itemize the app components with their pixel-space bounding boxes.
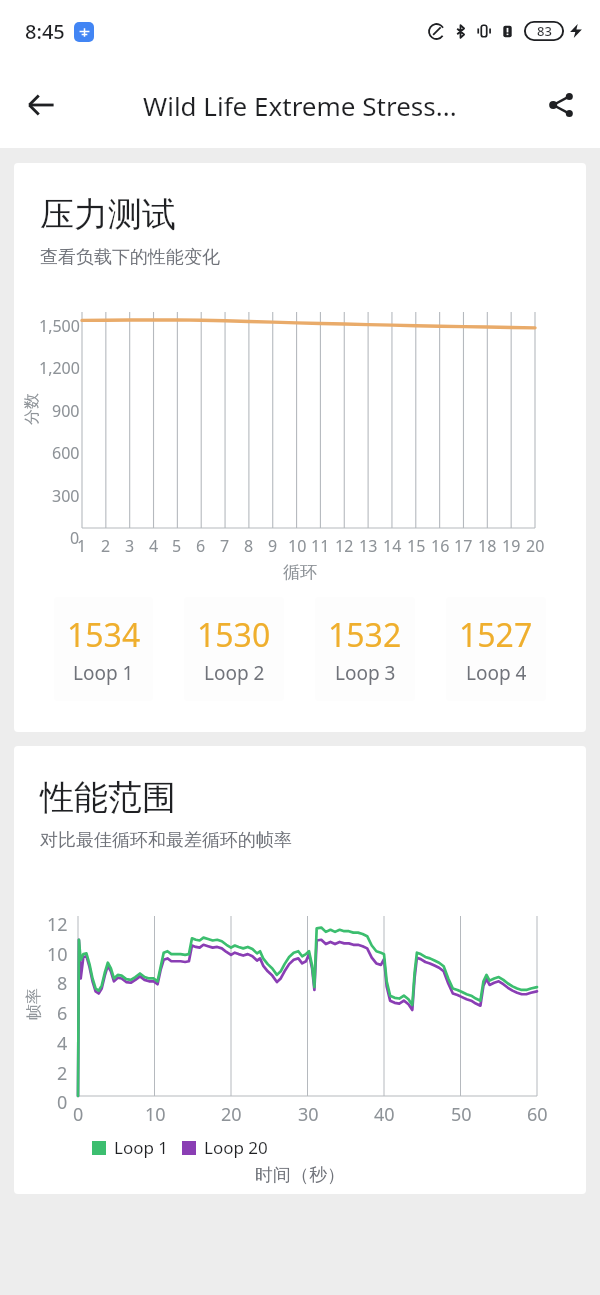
staticText: 1532 bbox=[328, 613, 402, 657]
staticText: 50 bbox=[451, 1102, 472, 1127]
staticText: 19 bbox=[502, 535, 521, 557]
staticText: 性能范围 bbox=[40, 776, 176, 819]
staticText: 83 bbox=[537, 22, 552, 40]
staticText: 17 bbox=[454, 535, 473, 557]
staticText: 6 bbox=[57, 1001, 68, 1026]
staticText: 10 bbox=[288, 535, 307, 557]
staticText: 3 bbox=[125, 535, 135, 557]
staticText: 分数 bbox=[22, 393, 42, 425]
staticText: 0 bbox=[73, 1102, 84, 1127]
staticText: 0 bbox=[70, 527, 80, 549]
staticText: 7 bbox=[220, 535, 230, 557]
staticText: Loop 1 bbox=[114, 1136, 169, 1159]
staticText: 1527 bbox=[459, 613, 533, 657]
staticText: 8 bbox=[57, 971, 68, 996]
staticText: 20 bbox=[221, 1102, 242, 1127]
staticText: 10 bbox=[145, 1102, 166, 1127]
staticText: 9 bbox=[268, 535, 278, 557]
staticText: Loop 4 bbox=[466, 660, 527, 686]
staticText: 2 bbox=[57, 1061, 68, 1086]
staticText: 查看负载下的性能变化 bbox=[40, 246, 220, 269]
staticText: 11 bbox=[311, 535, 330, 557]
staticText: 600 bbox=[52, 442, 80, 464]
staticText: 10 bbox=[47, 942, 68, 967]
staticText: 300 bbox=[52, 485, 80, 507]
staticText: 40 bbox=[374, 1102, 395, 1127]
staticText: 4 bbox=[149, 535, 159, 557]
staticText: 13 bbox=[359, 535, 378, 557]
staticText: 0 bbox=[57, 1090, 68, 1115]
staticText: Loop 20 bbox=[204, 1136, 268, 1159]
staticText: 1530 bbox=[197, 613, 271, 657]
staticText: 2 bbox=[101, 535, 111, 557]
staticText: 1,500 bbox=[39, 315, 80, 337]
staticText: 对比最佳循环和最差循环的帧率 bbox=[40, 829, 292, 852]
staticText: 14 bbox=[383, 535, 402, 557]
staticText: 循环 bbox=[283, 562, 317, 583]
staticText: 900 bbox=[52, 400, 80, 422]
staticText: Loop 1 bbox=[73, 660, 134, 686]
staticText: 60 bbox=[527, 1102, 548, 1127]
staticText: 16 bbox=[431, 535, 450, 557]
staticText: Loop 2 bbox=[204, 660, 265, 686]
button[interactable]: Back bbox=[14, 78, 68, 132]
button[interactable]: Share bbox=[534, 78, 588, 132]
staticText: 18 bbox=[478, 535, 497, 557]
staticText: 30 bbox=[298, 1102, 319, 1127]
staticText: 12 bbox=[335, 535, 354, 557]
staticText: Wild Life Extreme Stress... bbox=[143, 88, 457, 123]
button[interactable]: 1532 bbox=[315, 597, 415, 701]
button[interactable]: 1534 bbox=[54, 597, 153, 701]
button[interactable]: 1527 bbox=[446, 597, 546, 701]
button[interactable]: 1530 bbox=[184, 597, 284, 701]
staticText: 12 bbox=[47, 912, 68, 937]
staticText: 1 bbox=[77, 535, 87, 557]
staticText: 压力测试 bbox=[40, 193, 176, 236]
staticText: 8:45 bbox=[25, 18, 65, 45]
staticText: 1,200 bbox=[39, 357, 80, 379]
staticText: 1534 bbox=[67, 613, 141, 657]
staticText: 6 bbox=[196, 535, 206, 557]
staticText: 帧率 bbox=[24, 988, 44, 1020]
staticText: 5 bbox=[172, 535, 182, 557]
staticText: 15 bbox=[407, 535, 426, 557]
staticText: 时间（秒） bbox=[255, 1164, 345, 1187]
staticText: Loop 3 bbox=[335, 660, 396, 686]
staticText: 20 bbox=[526, 535, 545, 557]
staticText: 4 bbox=[57, 1031, 68, 1056]
staticText: 8 bbox=[244, 535, 254, 557]
